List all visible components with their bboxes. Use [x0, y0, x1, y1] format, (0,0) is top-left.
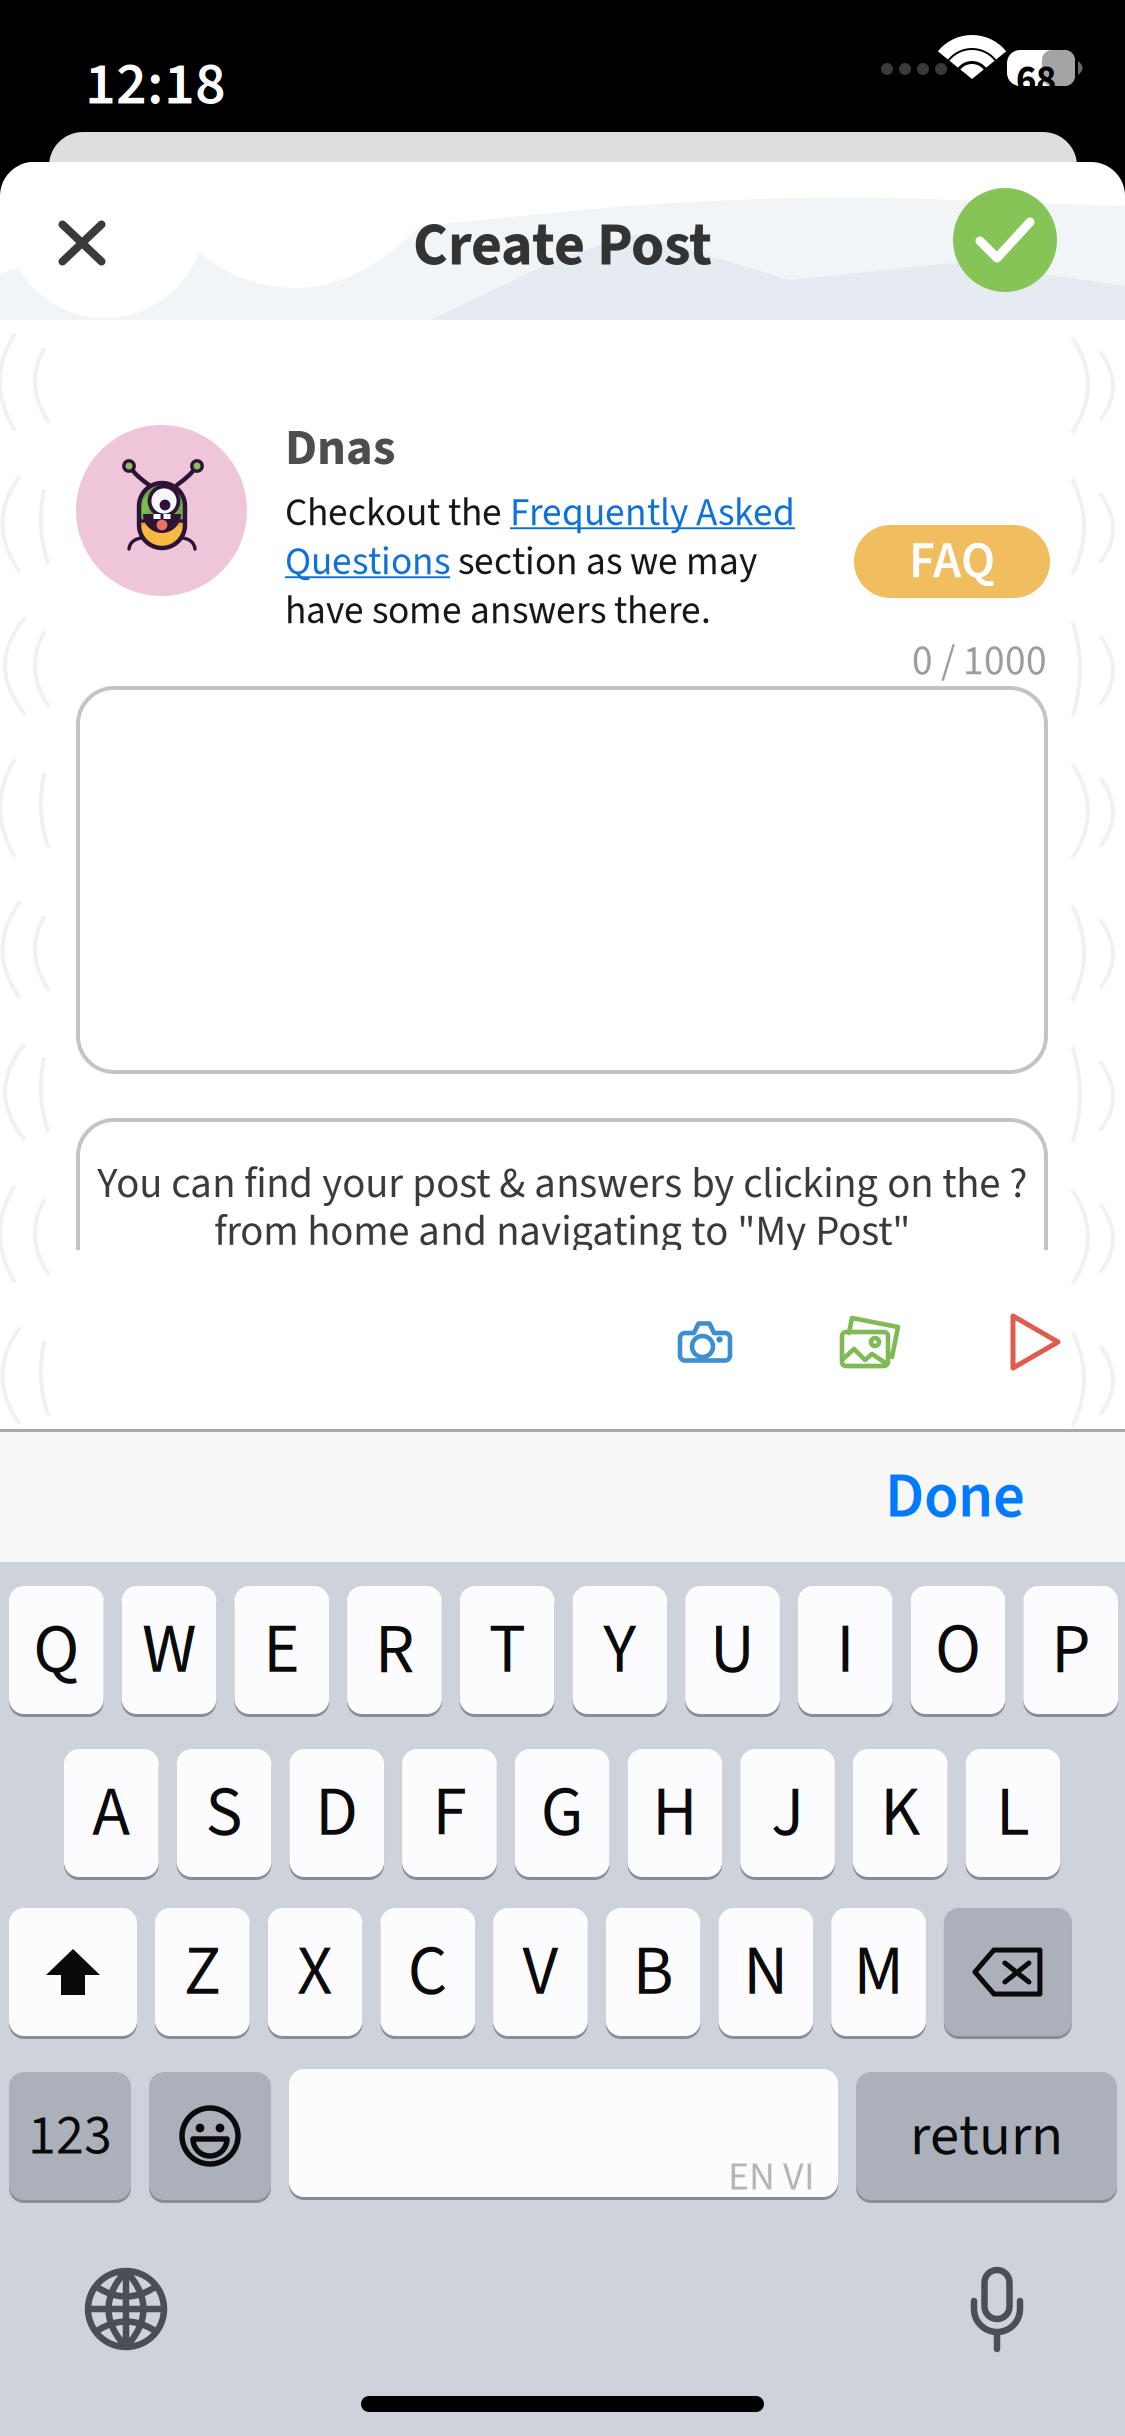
button[interactable]: M — [831, 1905, 926, 2039]
staticText: U — [710, 1601, 755, 1699]
button[interactable]: Y — [572, 1583, 667, 1717]
staticText: 0 / 1000 — [912, 632, 1047, 691]
button[interactable]: S — [177, 1746, 271, 1880]
button[interactable]: 123 — [9, 2069, 131, 2203]
button[interactable]: L — [966, 1746, 1060, 1880]
staticText: Z — [184, 1923, 221, 2021]
button[interactable]: I — [798, 1583, 893, 1717]
button[interactable]: Post — [945, 180, 1065, 300]
button[interactable]: T — [460, 1583, 554, 1717]
button[interactable]: E — [234, 1583, 329, 1717]
button[interactable]: Q — [9, 1583, 104, 1717]
staticText: Done — [885, 1452, 1025, 1542]
button[interactable]: F — [402, 1746, 497, 1880]
button[interactable]: D — [289, 1746, 384, 1880]
staticText: You can find your post & answers by clic… — [97, 1153, 1027, 1262]
button[interactable]: J — [740, 1746, 835, 1880]
button[interactable]: G — [515, 1746, 609, 1880]
staticText: E — [263, 1601, 300, 1699]
staticText: H — [652, 1764, 697, 1862]
staticText: F — [432, 1764, 466, 1862]
button[interactable]: C — [380, 1905, 475, 2039]
button[interactable]: V — [493, 1905, 588, 2039]
staticText: W — [142, 1601, 196, 1699]
staticText: M — [854, 1923, 904, 2021]
button[interactable]: W — [122, 1583, 216, 1717]
button[interactable]: A — [64, 1746, 159, 1880]
button[interactable]: return — [856, 2069, 1117, 2203]
button[interactable]: X — [268, 1905, 362, 2039]
button[interactable]: B — [606, 1905, 700, 2039]
button[interactable]: U — [685, 1583, 780, 1717]
staticText: N — [743, 1923, 788, 2021]
button[interactable]: K — [853, 1746, 948, 1880]
staticText: Dnas — [285, 412, 395, 484]
button[interactable]: P — [1023, 1583, 1118, 1717]
staticText: L — [996, 1764, 1030, 1862]
staticText: A — [92, 1764, 130, 1862]
button[interactable]: Shift — [9, 1905, 137, 2039]
staticText: 68 — [1016, 53, 1056, 108]
staticText: D — [315, 1764, 358, 1862]
button[interactable]: N — [718, 1905, 813, 2039]
button[interactable]: Close — [27, 190, 137, 296]
button[interactable]: Dictation — [942, 2254, 1052, 2364]
button[interactable]: Photo library — [810, 1292, 930, 1392]
staticText: Y — [603, 1601, 636, 1699]
staticText: C — [408, 1923, 448, 2021]
staticText: T — [489, 1601, 526, 1699]
button[interactable]: Emoji — [149, 2069, 271, 2203]
staticText: X — [297, 1923, 333, 2021]
staticText: R — [375, 1601, 414, 1699]
button[interactable]: Z — [155, 1905, 250, 2039]
staticText: 123 — [28, 2096, 112, 2176]
staticText: 12:18 — [85, 42, 226, 127]
staticText: V — [522, 1923, 558, 2021]
staticText: Q — [33, 1601, 79, 1699]
button[interactable]: Video — [975, 1292, 1095, 1392]
button[interactable]: FAQ — [854, 525, 1050, 598]
staticText: I — [836, 1601, 854, 1699]
staticText: Create Post — [413, 203, 712, 288]
staticText: P — [1051, 1601, 1090, 1699]
button[interactable]: Done — [840, 1432, 1070, 1562]
staticText: B — [633, 1923, 674, 2021]
button[interactable]: O — [911, 1583, 1005, 1717]
button[interactable]: R — [347, 1583, 442, 1717]
staticText: J — [771, 1764, 804, 1862]
staticText: K — [880, 1764, 920, 1862]
staticText: Checkout the Frequently Asked Questions … — [285, 485, 795, 639]
staticText: return — [910, 2094, 1063, 2178]
button[interactable]: H — [627, 1746, 722, 1880]
staticText: S — [205, 1764, 242, 1862]
staticText: O — [935, 1601, 981, 1699]
staticText: G — [541, 1764, 584, 1862]
staticText: EN VI — [728, 2148, 815, 2205]
button[interactable]: Camera — [645, 1292, 765, 1392]
button[interactable]: Space — [289, 2069, 838, 2203]
button[interactable]: Delete — [944, 1905, 1072, 2039]
button[interactable]: Switch keyboard — [71, 2254, 181, 2364]
staticText: FAQ — [909, 525, 995, 597]
